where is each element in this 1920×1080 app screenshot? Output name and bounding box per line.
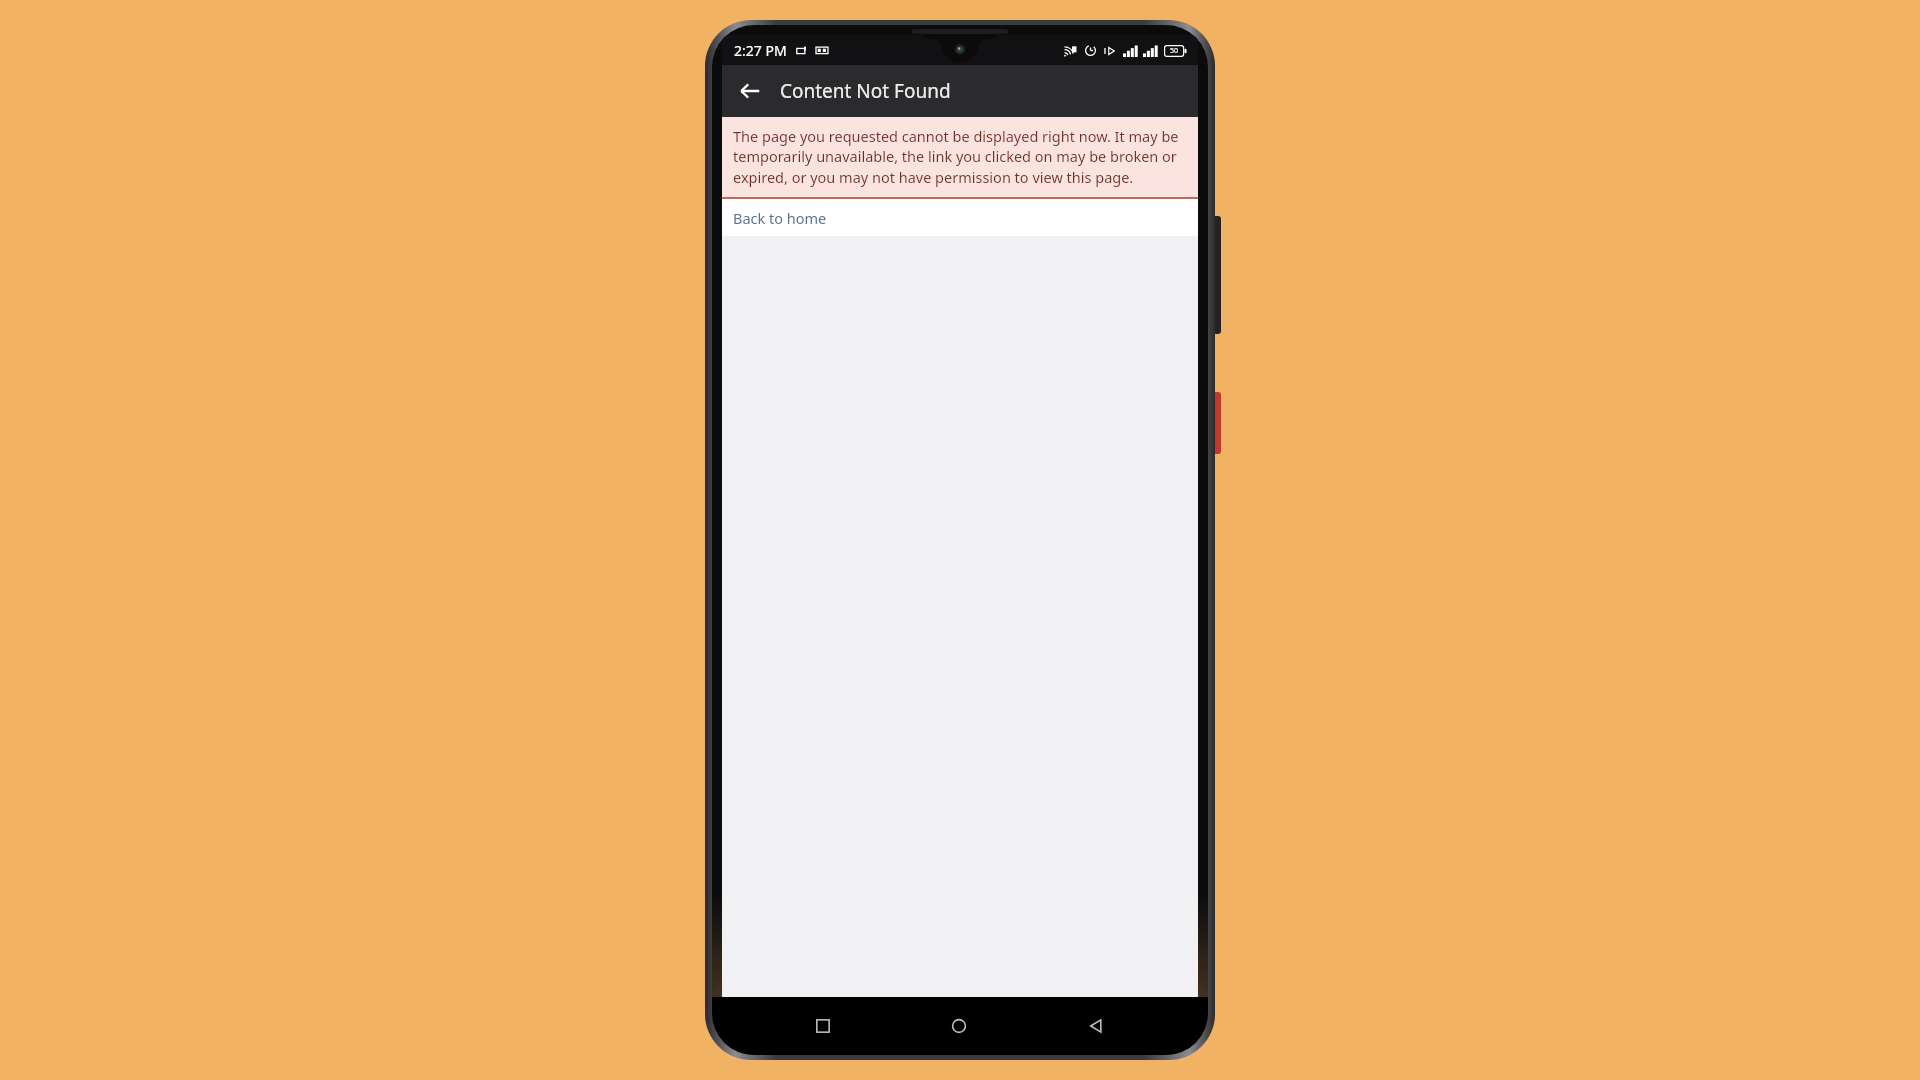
staticText: 50 xyxy=(1170,46,1179,56)
staticText: Content Not Found xyxy=(780,78,951,104)
button[interactable]: Back to home xyxy=(722,199,1198,236)
button[interactable]: Back xyxy=(728,69,772,113)
staticText: The page you requested cannot be display… xyxy=(733,126,1190,188)
button[interactable]: Home xyxy=(934,1001,984,1051)
button[interactable]: Recent apps xyxy=(798,1001,848,1051)
button[interactable]: Back xyxy=(1071,1001,1121,1051)
staticText: Back to home xyxy=(733,208,827,228)
staticText: 2:27 PM xyxy=(734,41,787,60)
